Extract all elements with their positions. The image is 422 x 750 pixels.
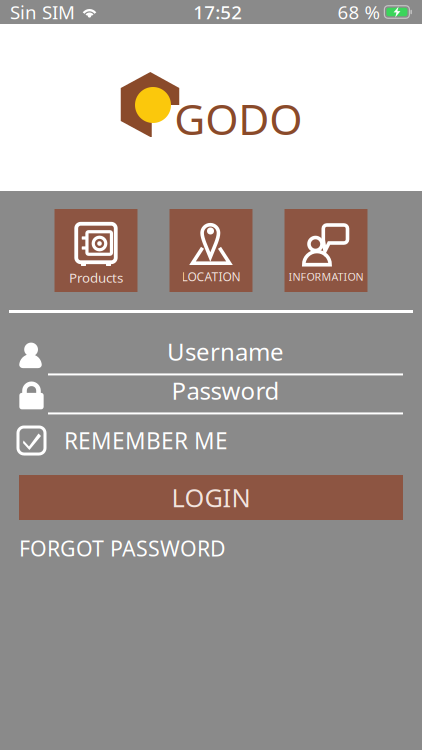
button[interactable]: INFORMATION	[284, 209, 367, 292]
button[interactable]: REMEMBER ME	[0, 427, 422, 454]
button[interactable]: FORGOT PASSWORD	[0, 534, 422, 562]
staticText: 17:52	[193, 0, 242, 24]
staticText: Password	[171, 375, 279, 406]
staticText: Username	[167, 336, 284, 367]
staticText: 68 %	[337, 0, 380, 24]
staticText: INFORMATION	[288, 269, 363, 284]
staticText: Products	[69, 269, 123, 286]
staticText: Sin SIM	[10, 0, 75, 24]
button[interactable]: Products	[54, 209, 137, 292]
staticText: LOCATION	[181, 268, 240, 284]
staticText: FORGOT PASSWORD	[19, 534, 226, 562]
button[interactable]: LOGIN	[19, 475, 403, 520]
staticText: LOGIN	[171, 481, 250, 514]
staticText: REMEMBER ME	[64, 425, 228, 455]
staticText: GODO	[174, 90, 302, 147]
button[interactable]: LOCATION	[169, 209, 252, 292]
